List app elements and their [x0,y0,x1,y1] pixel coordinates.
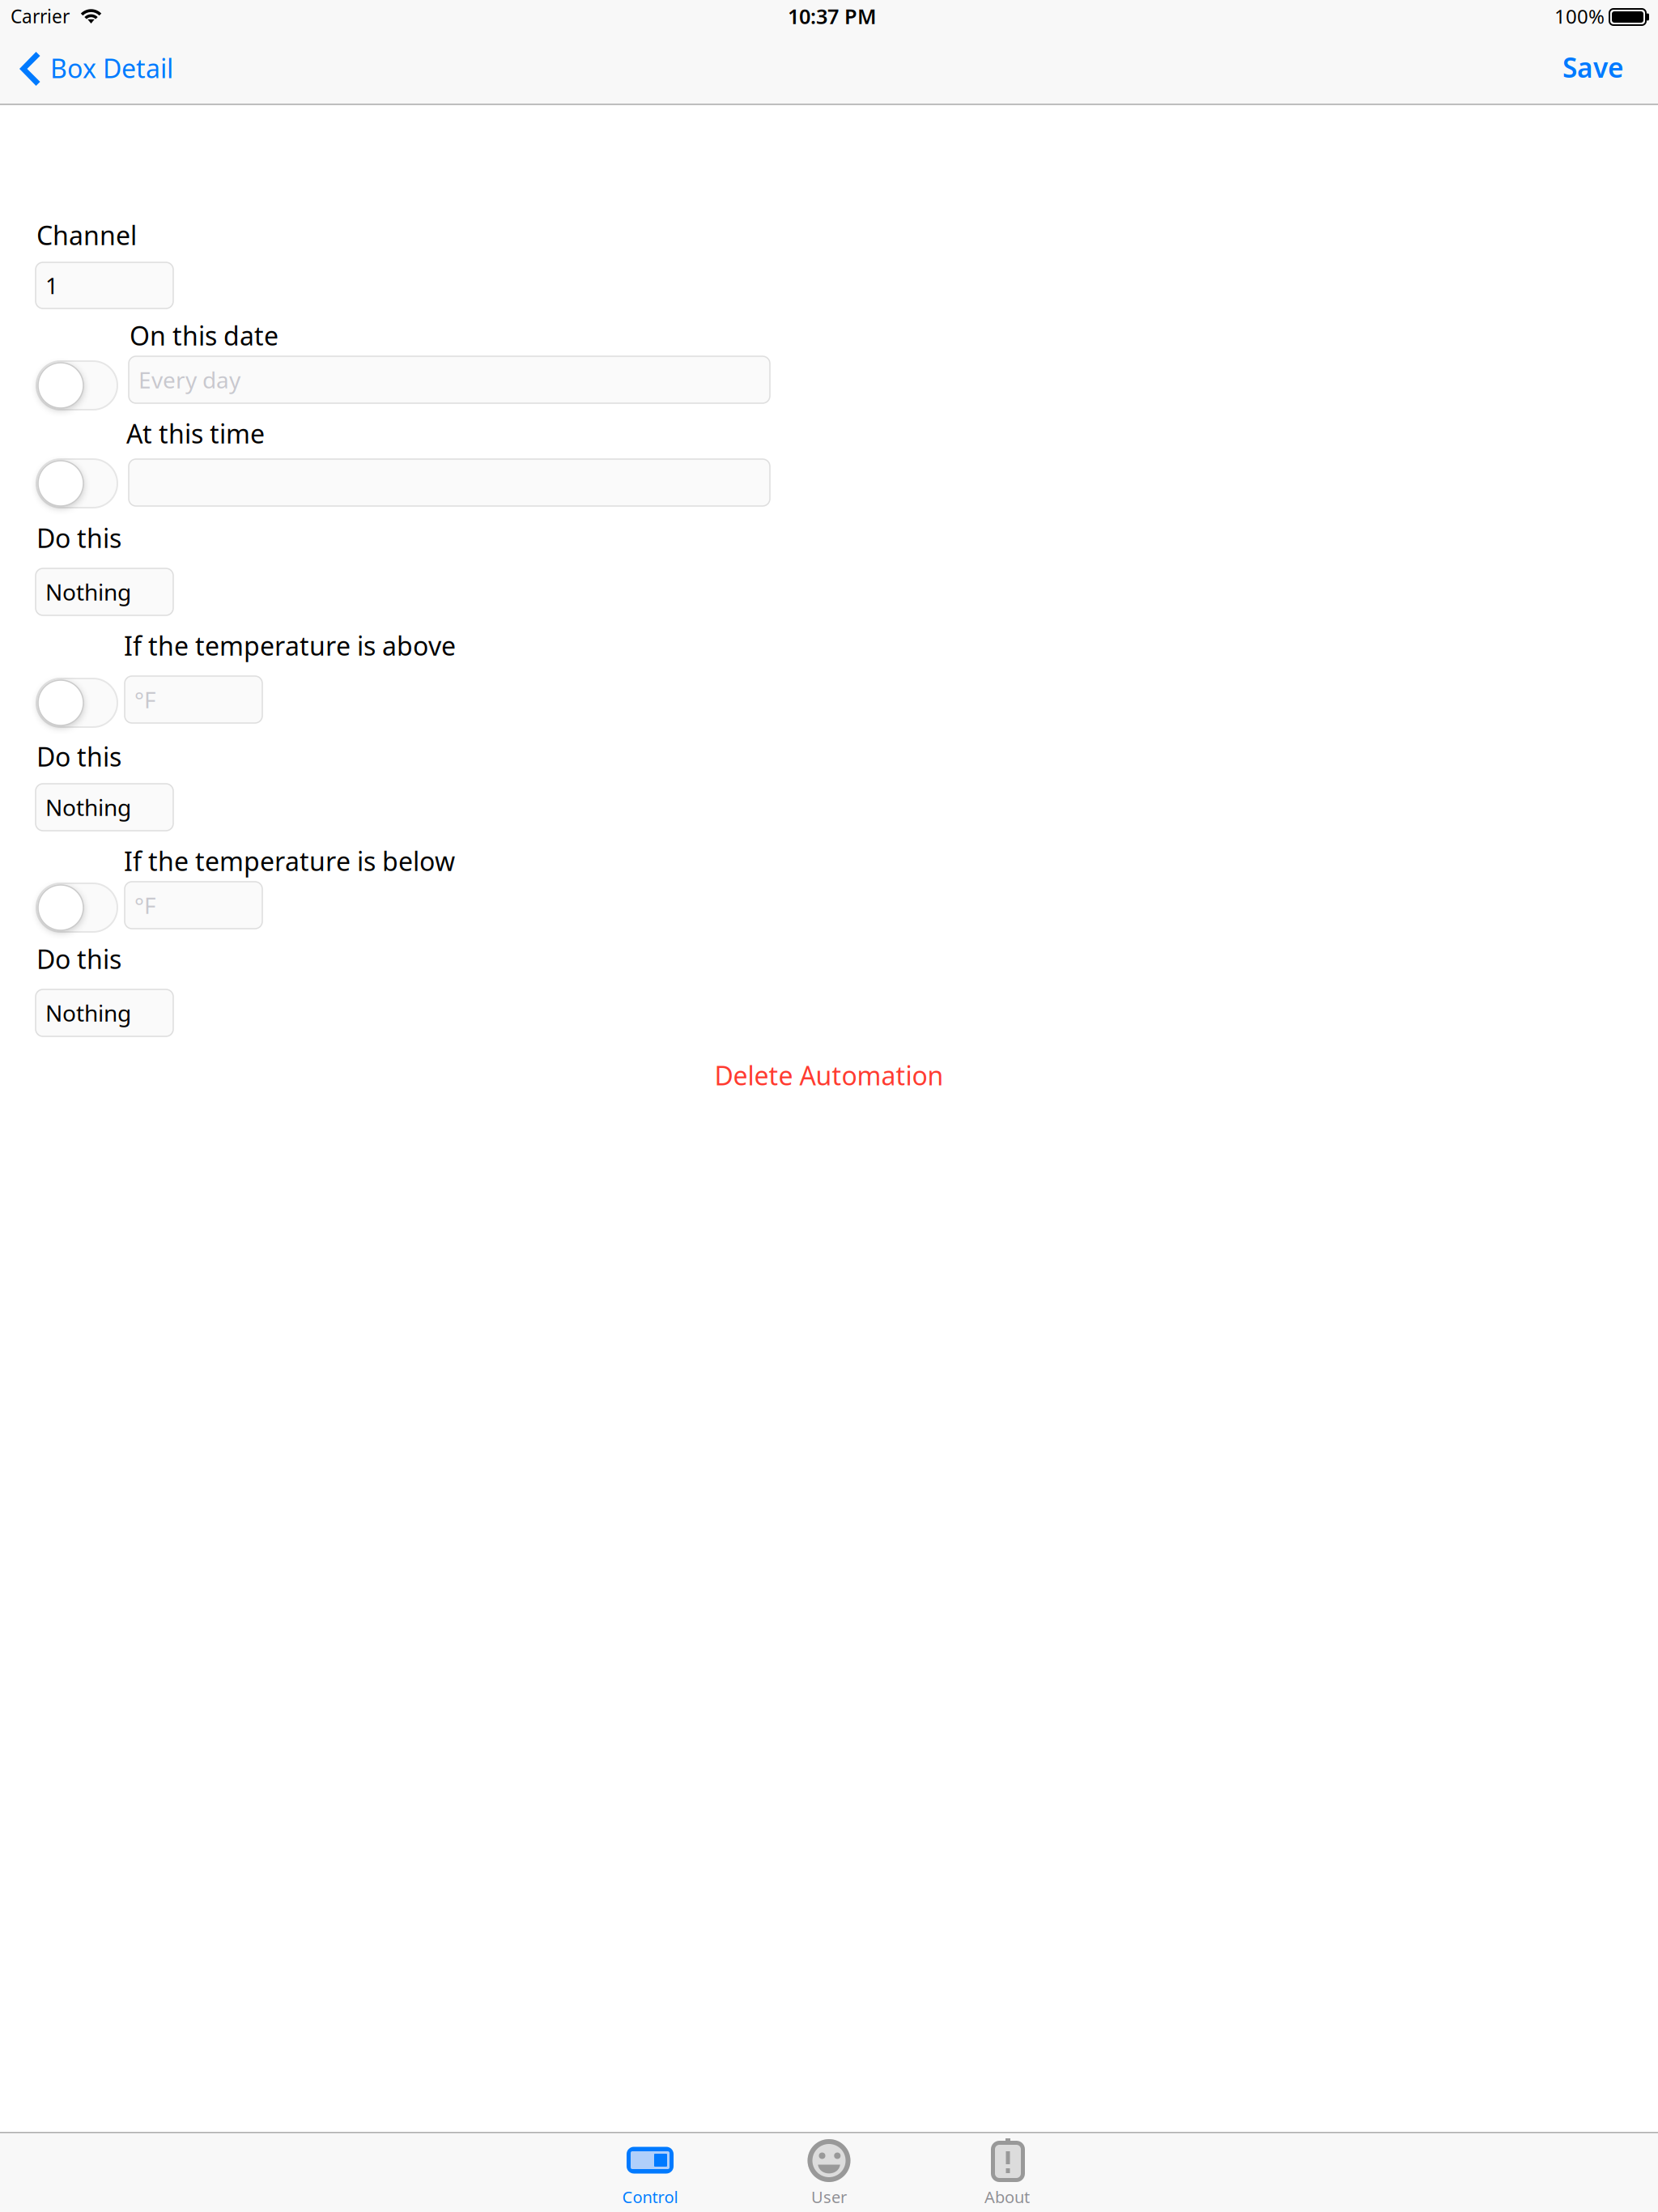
staticText: Do this [36,739,121,774]
staticText: Carrier [11,4,70,28]
staticText: Delete Automation [714,1058,944,1092]
button[interactable]: Delete Automation [659,1054,999,1096]
staticText: If the temperature is above [124,628,456,663]
staticText: °F [134,684,156,715]
staticText: 100% [1554,3,1605,29]
button[interactable]: User tab [740,2132,918,2212]
button[interactable]: About tab [918,2132,1096,2212]
staticText: At this time [126,416,265,451]
staticText: Do this [36,521,121,555]
staticText: Save [1562,49,1624,85]
button[interactable]: Box Detail [2,37,193,100]
button[interactable]: Control tab [561,2132,739,2212]
staticText: Every day [138,365,240,395]
staticText: °F [134,890,156,920]
staticText: If the temperature is below [124,844,455,878]
staticText: Channel [36,218,137,252]
staticText: 1 [45,270,58,300]
staticText: Do this [36,942,121,976]
staticText: 10:37 PM [788,2,877,30]
staticText: Nothing [45,792,131,822]
staticText: On this date [130,318,278,353]
staticText: Nothing [45,998,131,1028]
staticText: User [811,2186,847,2208]
staticText: About [984,2186,1030,2208]
staticText: Nothing [45,577,131,607]
staticText: Box Detail [50,51,173,85]
staticText: Control [622,2186,678,2208]
button[interactable]: Save [1533,40,1655,95]
